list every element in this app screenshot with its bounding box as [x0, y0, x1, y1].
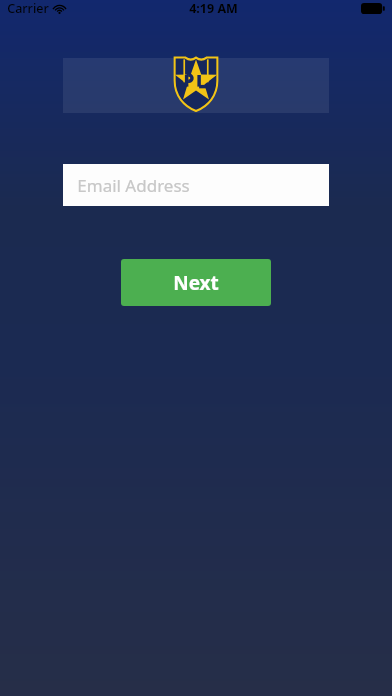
button[interactable]: Email Address: [63, 164, 329, 206]
other: Wi-Fi: [53, 2, 66, 15]
staticText: Email Address: [77, 174, 190, 197]
staticText: 4:19 AM: [189, 0, 238, 17]
other: PL shield logo: [172, 55, 220, 113]
button[interactable]: Next: [121, 259, 271, 306]
other: Battery: [361, 3, 385, 14]
staticText: Next: [173, 270, 219, 296]
staticText: Carrier: [7, 0, 49, 17]
